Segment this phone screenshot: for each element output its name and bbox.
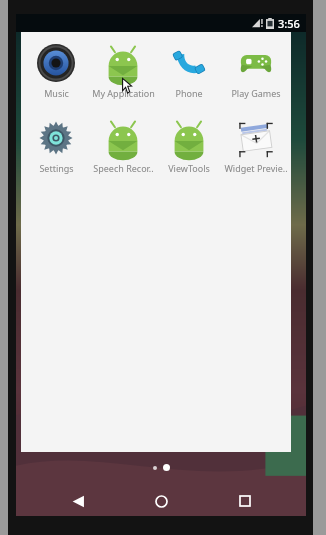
staticText: 3:56 <box>278 16 300 31</box>
staticText: Settings <box>39 162 74 174</box>
staticText: ViewTools <box>168 162 210 174</box>
button[interactable]: Back <box>56 486 100 516</box>
button[interactable]: Widget Previe.. <box>224 115 288 176</box>
staticText: My Application <box>92 87 155 99</box>
staticText: Music <box>44 87 69 99</box>
staticText: Widget Previe.. <box>224 162 288 174</box>
staticText: Speech Recor.. <box>93 162 154 174</box>
button[interactable]: Speech Recor.. <box>91 115 155 176</box>
button[interactable]: My Application <box>91 40 155 101</box>
staticText: Phone <box>175 87 203 99</box>
button[interactable]: Recent apps <box>223 486 267 516</box>
button[interactable]: Music <box>24 40 88 101</box>
button[interactable]: ViewTools <box>157 115 221 176</box>
button[interactable]: Home <box>139 486 183 516</box>
button[interactable]: Play Games <box>224 40 288 101</box>
button[interactable]: Phone <box>157 40 221 101</box>
button[interactable]: Settings <box>24 115 88 176</box>
staticText: Play Games <box>231 87 281 99</box>
